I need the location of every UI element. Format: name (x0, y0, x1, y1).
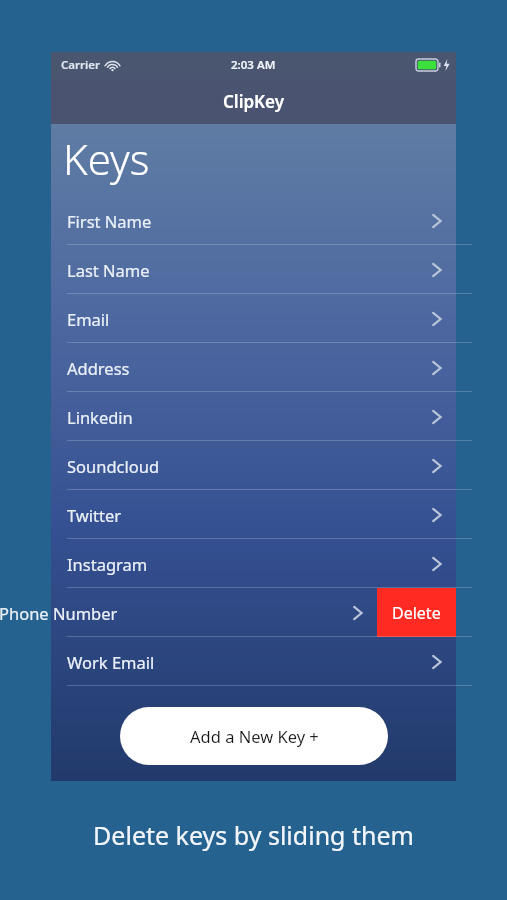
button[interactable]: Last Name (51, 245, 456, 294)
button[interactable]: Email (51, 294, 456, 343)
other: Open Address (431, 359, 443, 377)
staticText: Delete keys by sliding them (0, 818, 507, 852)
staticText: Soundcloud (67, 455, 160, 477)
other: Open First Name (431, 212, 443, 230)
staticText: Phone Number (0, 602, 118, 624)
button[interactable]: Address (51, 343, 456, 392)
staticText: Instagram (67, 553, 148, 575)
other: Open Instagram (431, 555, 443, 573)
button[interactable]: Linkedin (51, 392, 456, 441)
staticText: 2:03 AM (231, 57, 276, 73)
staticText: Keys (63, 130, 150, 187)
staticText: Twitter (67, 504, 122, 526)
staticText: Add a New Key + (190, 725, 319, 747)
staticText: Delete (392, 602, 441, 624)
button[interactable]: Add a New Key + (120, 707, 388, 765)
staticText: Address (67, 357, 130, 379)
staticText: First Name (67, 210, 152, 232)
other: Open Last Name (431, 261, 443, 279)
staticText: Last Name (67, 259, 150, 281)
staticText: Linkedin (67, 406, 133, 428)
other: Open Soundcloud (431, 457, 443, 475)
button[interactable]: First Name (51, 196, 456, 245)
staticText: Work Email (67, 651, 155, 673)
button[interactable]: Phone Number (51, 588, 456, 637)
button[interactable]: Instagram (51, 539, 456, 588)
button[interactable]: Twitter (51, 490, 456, 539)
other: Open Phone Number (352, 604, 364, 622)
other: Open Twitter (431, 506, 443, 524)
button[interactable]: Soundcloud (51, 441, 456, 490)
other: Open Linkedin (431, 408, 443, 426)
other: Open Work Email (431, 653, 443, 671)
button[interactable]: Work Email (51, 637, 456, 686)
other: Open Email (431, 310, 443, 328)
button[interactable]: Delete (377, 588, 456, 637)
staticText: ClipKey (223, 90, 285, 113)
staticText: Carrier (61, 57, 101, 73)
staticText: Email (67, 308, 110, 330)
